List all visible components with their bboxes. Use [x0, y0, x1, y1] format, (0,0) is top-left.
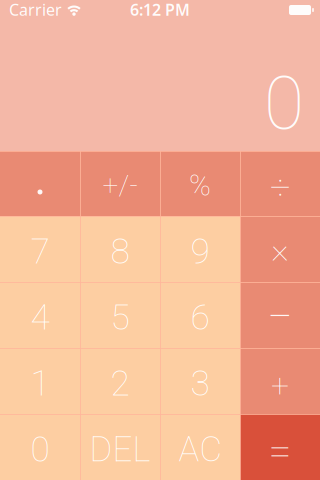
button[interactable]: ÷ [240, 151, 320, 216]
button[interactable]: 2 [80, 348, 160, 414]
button[interactable]: 8 [80, 216, 160, 282]
button[interactable]: DEL [80, 414, 160, 480]
staticText: +/- [102, 169, 137, 202]
staticText: 4 [30, 297, 49, 338]
button[interactable]: × [240, 216, 320, 282]
staticText: × [271, 229, 289, 269]
staticText: − [267, 290, 293, 343]
button[interactable]: 9 [160, 216, 240, 282]
button[interactable]: − [240, 282, 320, 348]
staticText: AC [178, 429, 221, 470]
button[interactable]: 1 [0, 348, 80, 414]
staticText: % [189, 168, 211, 203]
button[interactable]: 4 [0, 282, 80, 348]
staticText: 5 [110, 297, 129, 338]
staticText: + [271, 367, 289, 404]
staticText: 0 [264, 61, 304, 147]
button[interactable]: = [240, 414, 320, 480]
staticText: 6 [190, 297, 209, 338]
staticText: 6:12 PM [130, 0, 190, 20]
staticText: Carrier [9, 0, 62, 20]
button[interactable]: 3 [160, 348, 240, 414]
button[interactable]: % [160, 151, 240, 216]
staticText: 2 [110, 363, 129, 404]
staticText: 1 [30, 363, 49, 404]
button[interactable]: + [240, 348, 320, 414]
button[interactable]: Decimal point [0, 151, 80, 216]
staticText: 3 [190, 363, 209, 404]
staticText: 7 [30, 231, 49, 272]
button[interactable]: 0 [0, 414, 80, 480]
staticText: 8 [110, 231, 129, 272]
button[interactable]: +/- [80, 151, 160, 216]
button[interactable]: 6 [160, 282, 240, 348]
button[interactable]: 7 [0, 216, 80, 282]
staticText: = [268, 427, 291, 475]
staticText: ÷ [270, 166, 290, 209]
staticText: 0 [30, 429, 49, 470]
button[interactable]: 5 [80, 282, 160, 348]
staticText: 9 [190, 231, 209, 272]
staticText: DEL [89, 429, 150, 470]
button[interactable]: AC [160, 414, 240, 480]
